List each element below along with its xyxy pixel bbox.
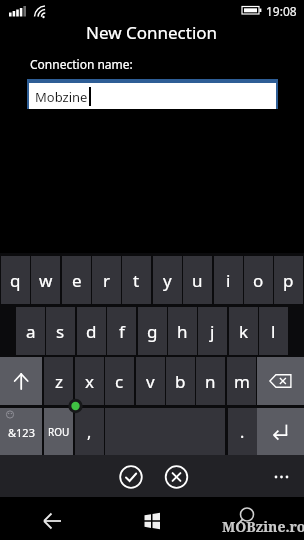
button[interactable]: l [259, 307, 288, 355]
staticText: 19:08 [266, 3, 297, 19]
button[interactable]: m [227, 357, 256, 405]
button[interactable]: k [229, 307, 258, 355]
button[interactable]: e [62, 256, 91, 304]
staticText: l [271, 320, 276, 343]
button[interactable]: p [274, 256, 303, 304]
staticText: MOBzine.ro [222, 517, 304, 536]
button[interactable]: r [92, 256, 121, 304]
button[interactable] [0, 357, 42, 405]
button[interactable]: t [122, 256, 151, 304]
button[interactable]: &123 [0, 408, 42, 456]
button[interactable] [257, 357, 304, 405]
staticText: h [177, 320, 188, 343]
button[interactable]: i [214, 256, 243, 304]
button[interactable]: s [46, 307, 75, 355]
staticText: o [253, 269, 264, 292]
staticText: u [192, 269, 203, 292]
staticText: g [147, 320, 158, 343]
button[interactable]: , [75, 408, 104, 456]
staticText: e [72, 269, 82, 292]
staticText: k [239, 320, 249, 343]
button[interactable]: y [153, 256, 182, 304]
staticText: New Connection [86, 21, 218, 44]
button[interactable]: n [196, 357, 225, 405]
staticText: n [205, 370, 216, 393]
staticText: &123 [8, 425, 35, 440]
staticText: Mobzine [35, 88, 88, 106]
staticText: x [85, 370, 94, 393]
staticText: z [55, 370, 63, 393]
staticText: w [39, 269, 53, 292]
button[interactable] [117, 463, 145, 491]
staticText: ROU [48, 425, 70, 439]
button[interactable]: b [166, 357, 195, 405]
staticText: a [26, 320, 36, 343]
button[interactable] [162, 463, 190, 491]
button[interactable] [36, 505, 68, 537]
button[interactable]: u [183, 256, 212, 304]
button[interactable]: h [168, 307, 197, 355]
staticText: d [86, 320, 97, 343]
button[interactable]: j [198, 307, 227, 355]
button[interactable]: ROU [44, 408, 73, 456]
staticText: j [210, 320, 215, 343]
button[interactable]: q [1, 256, 30, 304]
button[interactable]: f [107, 307, 136, 355]
staticText: c [115, 370, 124, 393]
staticText: b [175, 370, 186, 393]
button[interactable] [257, 408, 304, 456]
button[interactable]: w [31, 256, 60, 304]
button[interactable]: z [44, 357, 73, 405]
button[interactable]: c [105, 357, 134, 405]
staticText: r [103, 269, 111, 292]
staticText: . [240, 421, 245, 443]
staticText: v [146, 370, 155, 393]
staticText: , [87, 421, 92, 443]
button[interactable] [136, 505, 168, 537]
button[interactable]: v [136, 357, 165, 405]
staticText: t [133, 269, 140, 292]
staticText: q [10, 269, 21, 292]
staticText: Connection name: [30, 56, 133, 72]
staticText: y [163, 269, 172, 292]
staticText: m [234, 370, 250, 393]
button[interactable]: g [138, 307, 167, 355]
button[interactable] [266, 463, 296, 491]
staticText: f [119, 320, 125, 343]
button[interactable]: o [244, 256, 273, 304]
button[interactable]: Mobzine [27, 79, 278, 109]
button[interactable] [231, 505, 263, 537]
staticText: i [226, 269, 231, 292]
staticText: p [283, 269, 294, 292]
button[interactable]: x [75, 357, 104, 405]
button[interactable]: . [228, 408, 257, 456]
button[interactable]: a [16, 307, 45, 355]
staticText: s [56, 320, 65, 343]
button[interactable]: d [77, 307, 106, 355]
